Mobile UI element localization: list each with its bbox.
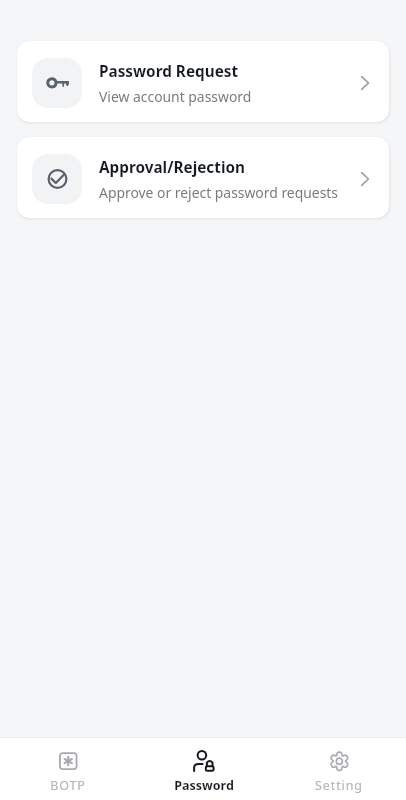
button[interactable]: BOTP — [0, 749, 136, 800]
button[interactable]: Approval/Rejection — [17, 137, 389, 218]
button[interactable]: Setting — [271, 749, 406, 800]
button[interactable]: Password — [136, 749, 271, 800]
button[interactable]: Password Request — [17, 41, 389, 122]
staticText: View account password — [99, 87, 252, 106]
staticText: Approve or reject password requests — [99, 183, 338, 202]
staticText: Setting — [315, 777, 363, 794]
staticText: Password Request — [99, 61, 239, 82]
staticText: Password — [174, 777, 234, 794]
staticText: BOTP — [50, 777, 86, 794]
staticText: Approval/Rejection — [99, 157, 245, 178]
